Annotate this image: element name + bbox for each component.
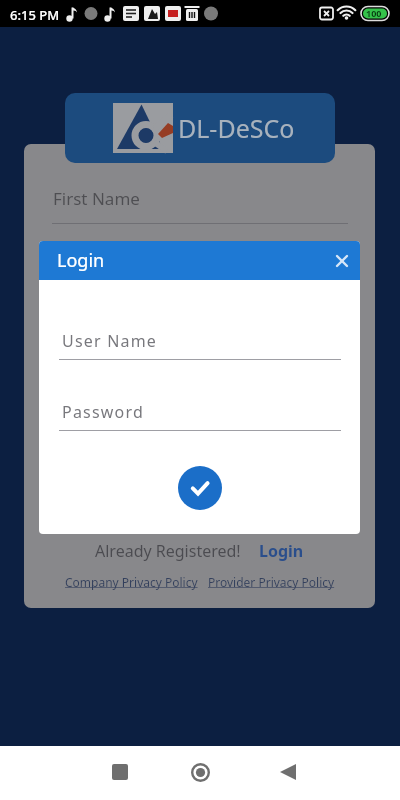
- staticText: Password: [62, 401, 144, 423]
- button[interactable]: Company Privacy Policy: [65, 574, 198, 590]
- staticText: User Name: [62, 330, 158, 352]
- button[interactable]: [59, 321, 341, 361]
- button[interactable]: [184, 756, 216, 788]
- staticText: 6:15 PM: [10, 6, 60, 24]
- button[interactable]: [59, 392, 341, 432]
- button[interactable]: [272, 756, 304, 788]
- button[interactable]: [104, 756, 136, 788]
- button[interactable]: Provider Privacy Policy: [208, 574, 335, 590]
- button[interactable]: [52, 182, 348, 225]
- button[interactable]: [178, 466, 222, 510]
- button[interactable]: Login: [259, 540, 304, 562]
- staticText: First Name: [53, 187, 140, 210]
- button[interactable]: [330, 249, 354, 273]
- staticText: Login: [57, 248, 105, 273]
- staticText: 100: [366, 7, 382, 19]
- staticText: DL-DeSCo: [178, 111, 295, 145]
- staticText: Already Registered!: [95, 540, 241, 562]
